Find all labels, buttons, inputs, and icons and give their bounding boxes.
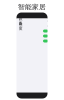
- staticText: 温度: [18, 21, 22, 31]
- staticText: 设备: [18, 16, 22, 26]
- staticText: 智能家居: [18, 3, 46, 11]
- staticText: >: [46, 18, 48, 24]
- staticText: >: [46, 23, 48, 29]
